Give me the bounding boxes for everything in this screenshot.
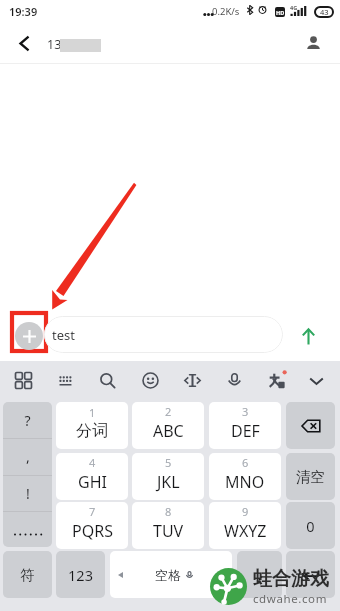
button[interactable]: ! xyxy=(3,475,52,511)
staticText: 43 xyxy=(320,7,329,17)
button[interactable]: Contact details xyxy=(295,23,335,64)
staticText: 8 xyxy=(165,504,172,519)
staticText: GHI xyxy=(78,471,107,493)
button[interactable]: Translate xyxy=(260,362,294,399)
staticText: 清空 xyxy=(296,468,325,486)
staticText: 1 xyxy=(89,405,96,420)
staticText: 6 xyxy=(242,455,249,470)
button[interactable]: 3 xyxy=(209,402,281,449)
button[interactable]: 5 xyxy=(132,453,204,500)
button[interactable]: Space xyxy=(110,551,232,598)
staticText: 分词 xyxy=(76,421,108,441)
button[interactable]: 符 xyxy=(3,551,52,598)
button[interactable]: 123 xyxy=(56,551,105,598)
button[interactable]: 4 xyxy=(56,453,128,500)
staticText: 19:39 xyxy=(9,4,38,19)
staticText: ! xyxy=(26,484,30,503)
staticText: MNO xyxy=(225,471,265,493)
staticText: 7 xyxy=(89,504,96,519)
staticText: , xyxy=(26,447,30,466)
staticText: 13 xyxy=(47,36,62,53)
staticText: PQRS xyxy=(72,520,113,542)
button[interactable]: Keyboard layouts xyxy=(6,362,40,399)
staticText: 4G xyxy=(290,4,298,11)
button[interactable]: Add attachment xyxy=(15,322,43,350)
button[interactable]: Search xyxy=(90,362,124,399)
staticText: 0 xyxy=(306,516,315,536)
staticText: TUV xyxy=(153,520,184,542)
staticText: 3 xyxy=(242,404,249,419)
staticText: HD xyxy=(276,9,285,16)
button[interactable]: Move cursor xyxy=(175,362,209,399)
button[interactable] xyxy=(3,511,52,547)
staticText: 2 xyxy=(165,404,172,419)
staticText: ABC xyxy=(153,420,184,442)
button[interactable]: Hide keyboard xyxy=(299,362,333,399)
staticText: 5 xyxy=(165,455,172,470)
button[interactable]: Enter xyxy=(286,551,335,598)
button[interactable]: ? xyxy=(3,402,52,438)
staticText: JKL xyxy=(157,471,180,493)
staticText: 4 xyxy=(89,455,96,470)
button[interactable]: 0 xyxy=(286,502,335,549)
staticText: 符 xyxy=(20,566,35,584)
staticText: 蛙合游戏 xyxy=(253,567,329,591)
button[interactable]: Backspace xyxy=(286,402,335,449)
staticText: cdwahe.com xyxy=(253,591,327,607)
staticText: ， xyxy=(252,566,267,584)
staticText: 空格 xyxy=(155,567,181,583)
button[interactable]: Keyboard xyxy=(48,362,82,399)
button[interactable]: Voice input xyxy=(217,362,251,399)
staticText: WXYZ xyxy=(224,520,267,542)
staticText: 123 xyxy=(68,565,93,585)
staticText: DEF xyxy=(231,420,260,442)
button[interactable]: Send xyxy=(292,320,324,352)
button[interactable]: 7 xyxy=(56,502,128,549)
staticText: test xyxy=(52,326,75,344)
button[interactable]: 2 xyxy=(132,402,204,449)
button[interactable]: Back xyxy=(4,23,44,64)
button[interactable]: ， xyxy=(237,551,282,598)
button[interactable]: 清空 xyxy=(286,453,335,500)
button[interactable]: test xyxy=(44,316,283,353)
button[interactable]: 1 xyxy=(56,402,128,449)
button[interactable]: 6 xyxy=(209,453,281,500)
staticText: ? xyxy=(24,411,31,430)
staticText: 9 xyxy=(242,504,249,519)
button[interactable]: 8 xyxy=(132,502,204,549)
button[interactable]: , xyxy=(3,438,52,474)
button[interactable]: Emoji xyxy=(133,362,167,399)
button[interactable]: 9 xyxy=(209,502,281,549)
staticText: 0.2K/s xyxy=(212,5,240,18)
